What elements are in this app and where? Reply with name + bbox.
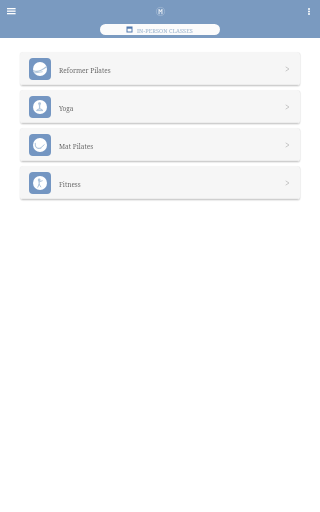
staticText: Fitness bbox=[59, 180, 81, 189]
staticText: Yoga bbox=[59, 104, 74, 113]
button[interactable]: More options bbox=[299, 1, 319, 21]
button[interactable]: Studio logo bbox=[150, 1, 170, 21]
button[interactable]: Yoga bbox=[20, 90, 300, 124]
button[interactable]: Fitness bbox=[20, 166, 300, 200]
staticText: Mat Pilates bbox=[59, 142, 94, 151]
staticText: Reformer Pilates bbox=[59, 66, 111, 75]
button[interactable]: Mat Pilates bbox=[20, 128, 300, 162]
button[interactable]: Open navigation menu bbox=[0, 0, 22, 22]
button[interactable]: Reformer Pilates bbox=[20, 52, 300, 86]
staticText: IN-PERSON CLASSES bbox=[137, 27, 193, 34]
button[interactable]: IN-PERSON CLASSES bbox=[100, 24, 220, 35]
